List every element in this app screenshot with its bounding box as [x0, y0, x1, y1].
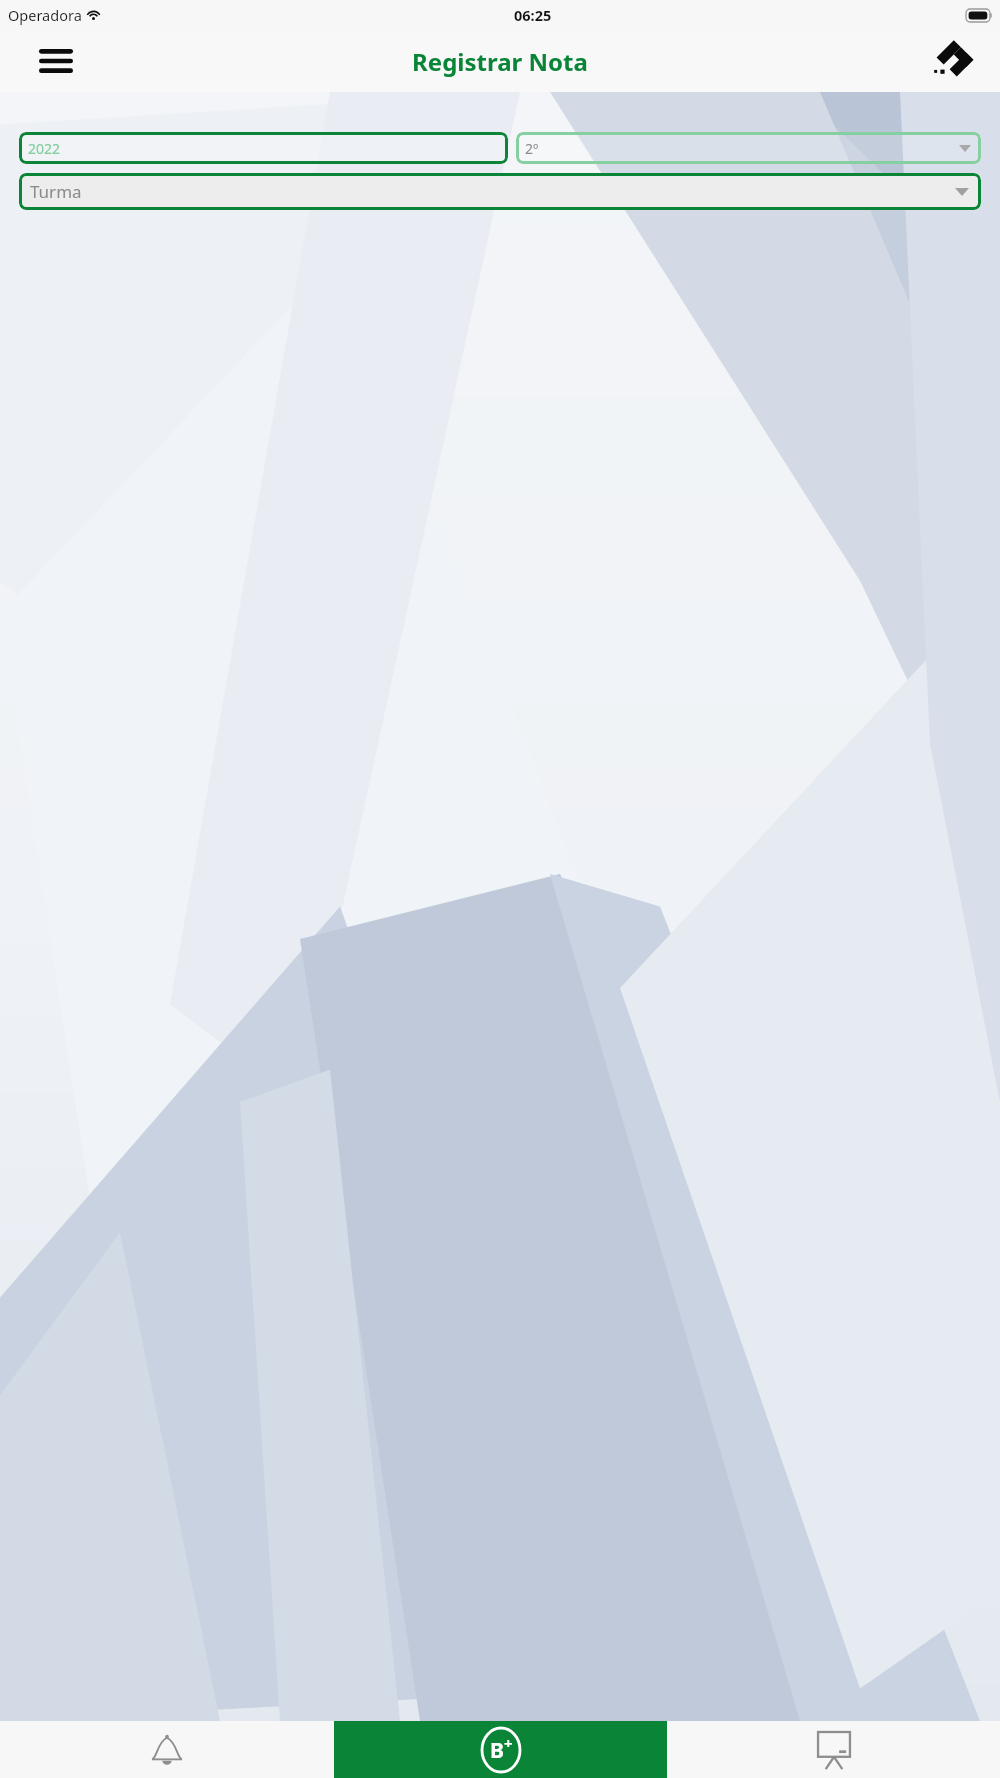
- staticText: Turma: [30, 180, 82, 203]
- button[interactable]: Turma: [19, 173, 981, 210]
- button[interactable]: 2022: [19, 132, 508, 164]
- button[interactable]: Classes: [667, 1721, 1000, 1778]
- button[interactable]: 2º: [516, 132, 981, 164]
- staticText: 2º: [525, 139, 539, 158]
- staticText: Registrar Nota: [412, 45, 588, 78]
- button[interactable]: Menu: [30, 35, 82, 87]
- staticText: 2022: [28, 139, 61, 158]
- staticText: Operadora: [8, 5, 82, 25]
- staticText: 06:25: [514, 5, 552, 25]
- button[interactable]: Logo: [926, 35, 978, 87]
- staticText: B: [490, 1736, 504, 1765]
- button[interactable]: Notifications: [0, 1721, 334, 1778]
- button[interactable]: Register grade: [334, 1721, 667, 1778]
- staticText: +: [504, 1733, 513, 1753]
